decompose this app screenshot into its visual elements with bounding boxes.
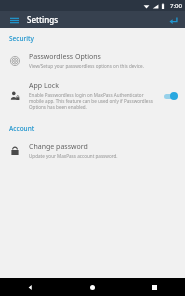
staticText: Update your MaxPass account password.	[29, 153, 118, 159]
button[interactable]: Open navigation menu	[7, 13, 21, 27]
staticText: Change password	[29, 142, 88, 152]
staticText: Security	[9, 34, 34, 43]
button[interactable]: App Lock	[0, 75, 185, 116]
button[interactable]: Recent apps	[123, 278, 185, 296]
button[interactable]: Back	[166, 13, 180, 27]
staticText: Settings	[27, 14, 59, 25]
button[interactable]: Back	[0, 278, 61, 296]
staticText: Enable Passwordless login on MaxPass Aut…	[29, 92, 159, 110]
button[interactable]: Home	[61, 278, 123, 296]
button[interactable]: App Lock toggle, on	[163, 91, 179, 101]
button[interactable]: Passwordless Options	[0, 46, 185, 75]
button[interactable]: Change password	[0, 136, 185, 165]
staticText: View/Setup your passwordless options on …	[29, 63, 144, 69]
staticText: App Lock	[29, 81, 59, 91]
staticText: Passwordless Options	[29, 52, 101, 62]
staticText: Account	[9, 124, 35, 133]
staticText: 7:00	[170, 2, 182, 10]
